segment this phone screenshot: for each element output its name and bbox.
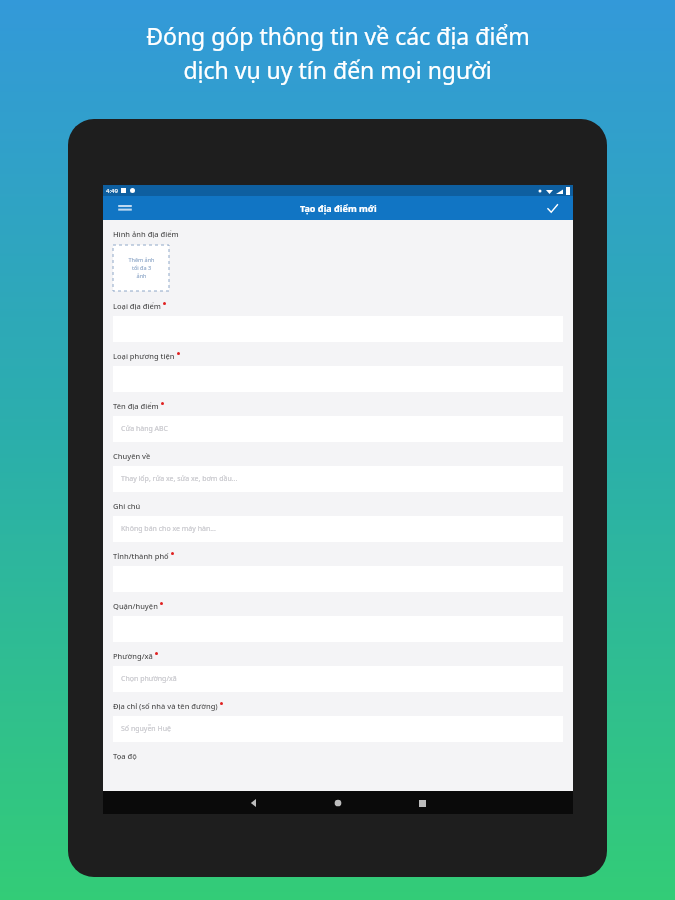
staticText: 4:49 bbox=[106, 187, 118, 195]
button[interactable]: Menu bbox=[117, 202, 133, 214]
staticText: Tên địa điểm bbox=[113, 401, 159, 411]
staticText: Chuyên về bbox=[113, 451, 151, 461]
staticText: Địa chỉ (số nhà và tên đường) bbox=[113, 701, 218, 711]
button[interactable]: Cửa hàng ABC bbox=[113, 416, 563, 442]
button[interactable]: Back bbox=[243, 792, 265, 814]
staticText: Hình ảnh địa điểm bbox=[113, 229, 179, 239]
staticText: Không bán cho xe máy hàn... bbox=[121, 524, 216, 534]
staticText: Thêm ảnh tối đa 3 ảnh bbox=[128, 256, 155, 280]
staticText: Loại địa điểm bbox=[113, 301, 161, 311]
staticText: Cửa hàng ABC bbox=[121, 424, 169, 434]
staticText: Thay lốp, rửa xe, sửa xe, bơm dầu... bbox=[121, 474, 238, 484]
staticText: Số nguyễn Huệ bbox=[121, 724, 171, 734]
staticText: Phường/xã bbox=[113, 651, 153, 661]
staticText: Chọn phường/xã bbox=[121, 674, 177, 684]
button[interactable]: Thêm ảnh tối đa 3 ảnh bbox=[113, 245, 169, 291]
staticText: Quận/huyện bbox=[113, 601, 158, 611]
button[interactable]: Thay lốp, rửa xe, sửa xe, bơm dầu... bbox=[113, 466, 563, 492]
button[interactable]: Recents bbox=[411, 792, 433, 814]
button[interactable]: Chọn phường/xã bbox=[113, 666, 563, 692]
button[interactable]: Save bbox=[544, 200, 560, 216]
staticText: Loại phương tiện bbox=[113, 351, 175, 361]
button[interactable]: Không bán cho xe máy hàn... bbox=[113, 516, 563, 542]
staticText: dịch vụ uy tín đến mọi người bbox=[183, 54, 492, 85]
staticText: Tạo địa điểm mới bbox=[300, 202, 377, 214]
staticText: Tỉnh/thành phố bbox=[113, 551, 169, 561]
button[interactable]: Home bbox=[327, 792, 349, 814]
staticText: Ghi chú bbox=[113, 501, 141, 511]
staticText: Tọa độ bbox=[113, 751, 137, 761]
staticText: Đóng góp thông tin về các địa điểm bbox=[146, 20, 530, 51]
button[interactable]: Số nguyễn Huệ bbox=[113, 716, 563, 742]
